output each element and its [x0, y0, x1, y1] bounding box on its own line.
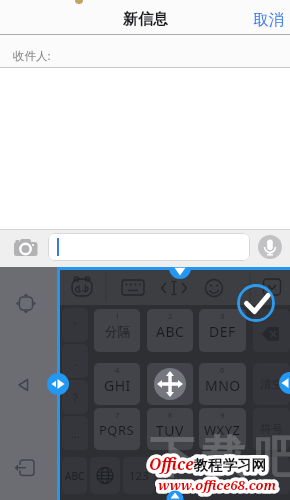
button[interactable]: 6: [199, 363, 246, 405]
button[interactable]: 8: [147, 408, 193, 450]
button[interactable]: [257, 234, 283, 260]
button[interactable]: [10, 234, 42, 262]
staticText: TUV: [156, 421, 184, 440]
button[interactable]: [8, 369, 38, 399]
button[interactable]: ?: [62, 380, 88, 414]
staticText: WXYZ: [204, 421, 241, 439]
button[interactable]: [157, 457, 246, 494]
button[interactable]: 清空: [253, 363, 290, 405]
button[interactable]: [119, 272, 147, 302]
staticText: 新信息: [123, 10, 168, 29]
staticText: 2: [168, 311, 173, 321]
staticText: www.office68.com: [158, 476, 277, 494]
button[interactable]: [238, 285, 274, 321]
button[interactable]: [68, 272, 96, 302]
staticText: 取消: [253, 10, 284, 30]
button[interactable]: [147, 363, 193, 405]
staticText: Office教程学习网: [149, 453, 266, 474]
button[interactable]: [166, 489, 184, 500]
button[interactable]: 4: [94, 363, 140, 405]
button[interactable]: 9: [199, 408, 246, 450]
staticText: 收件人:: [13, 48, 51, 64]
button[interactable]: [10, 452, 42, 484]
staticText: 7: [115, 410, 120, 420]
staticText: 6: [220, 365, 225, 375]
staticText: 9: [220, 410, 225, 420]
staticText: Office教程学习网: [149, 453, 266, 474]
button[interactable]: 123: [123, 457, 154, 494]
button[interactable]: [10, 287, 42, 319]
staticText: 符号: [260, 422, 283, 436]
staticText: 下载吧: [146, 430, 290, 485]
button[interactable]: [47, 373, 69, 395]
button[interactable]: [90, 457, 120, 494]
staticText: 1: [115, 311, 120, 321]
staticText: 分隔: [105, 324, 130, 340]
button[interactable]: [48, 233, 250, 261]
staticText: DEF: [209, 322, 236, 341]
button[interactable]: [279, 372, 290, 394]
button[interactable]: 取消: [253, 10, 284, 30]
button[interactable]: [169, 267, 191, 281]
button[interactable]: [200, 272, 228, 302]
staticText: ABC: [65, 469, 85, 483]
button[interactable]: 3: [199, 309, 246, 352]
button[interactable]: [258, 272, 284, 302]
staticText: PQRS: [99, 421, 135, 439]
button[interactable]: [160, 272, 188, 302]
staticText: MNO: [205, 376, 241, 395]
staticText: www.office68.com: [158, 476, 277, 494]
button[interactable]: [253, 309, 290, 352]
staticText: ?: [73, 390, 78, 405]
button[interactable]: 2: [147, 309, 193, 352]
button[interactable]: 符号: [253, 408, 290, 450]
button[interactable]: ABC: [62, 457, 87, 494]
button[interactable]: [253, 457, 290, 494]
staticText: ABC: [156, 322, 185, 341]
button[interactable]: 7: [94, 408, 140, 450]
button[interactable]: 1: [94, 309, 140, 352]
staticText: 清空: [260, 377, 283, 391]
staticText: 123: [129, 468, 149, 484]
staticText: 4: [115, 365, 120, 375]
staticText: 3: [220, 311, 225, 321]
staticText: 8: [168, 410, 173, 420]
button[interactable]: .: [62, 344, 88, 378]
staticText: GHI: [104, 376, 131, 395]
